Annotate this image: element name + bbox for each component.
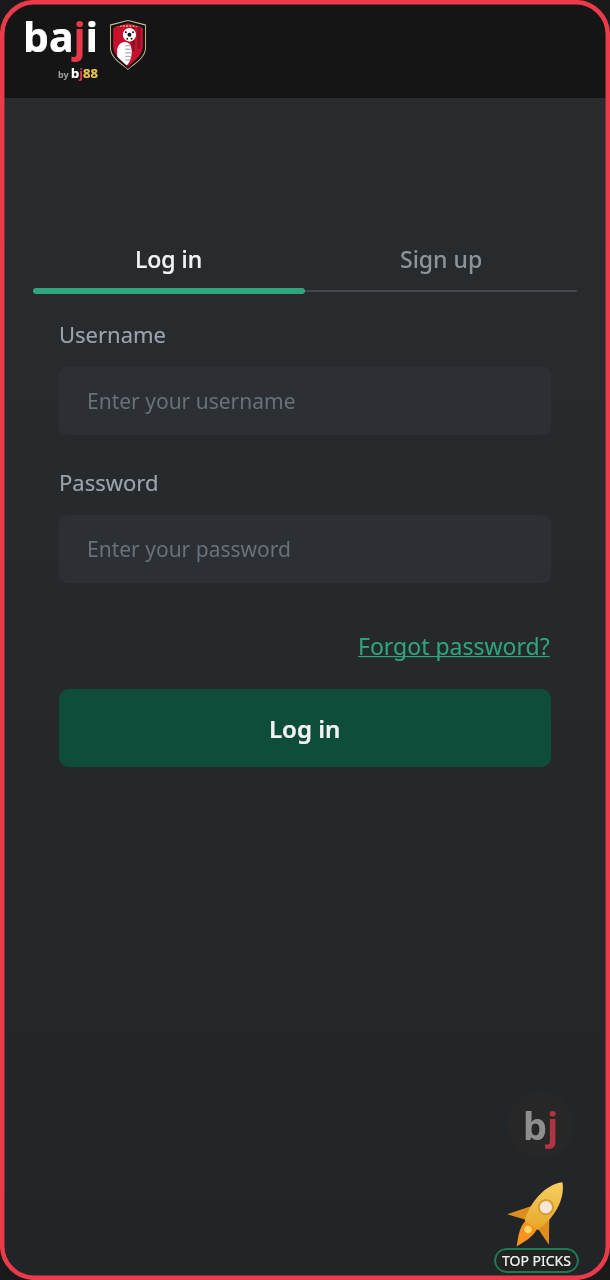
button[interactable]: Enter your username xyxy=(59,367,551,435)
staticText: Enter your username xyxy=(87,387,296,416)
button[interactable]: Log in xyxy=(59,689,551,767)
staticText: by bj88 xyxy=(58,64,98,82)
staticText: Password xyxy=(59,467,159,497)
staticText: TOP PICKS xyxy=(502,1251,571,1270)
staticText: Sign up xyxy=(400,243,483,274)
staticText: Log in xyxy=(135,243,203,274)
button[interactable]: Log in xyxy=(33,236,305,280)
button[interactable]: bj xyxy=(508,1092,574,1158)
button[interactable]: Forgot password? xyxy=(358,630,550,661)
staticText: Log in xyxy=(269,712,341,745)
staticText: baji xyxy=(23,8,98,64)
button[interactable]: TOP PICKS xyxy=(494,1248,579,1273)
staticText: bj xyxy=(523,1099,559,1151)
staticText: Username xyxy=(59,319,167,349)
button[interactable]: Sign up xyxy=(305,236,577,280)
button[interactable]: Enter your password xyxy=(59,515,551,583)
staticText: Enter your password xyxy=(87,535,291,564)
button[interactable] xyxy=(506,1179,574,1247)
